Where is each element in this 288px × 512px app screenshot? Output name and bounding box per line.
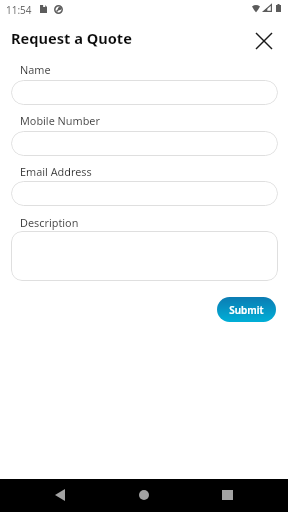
- staticText: Description: [20, 215, 79, 230]
- button[interactable]: [11, 131, 278, 156]
- button[interactable]: Close: [253, 30, 275, 52]
- button[interactable]: [11, 181, 278, 206]
- staticText: 11:54: [6, 3, 32, 17]
- button[interactable]: Back: [52, 487, 68, 503]
- button[interactable]: [11, 231, 278, 281]
- staticText: Email Address: [20, 164, 92, 179]
- staticText: Submit: [229, 303, 264, 316]
- staticText: Mobile Number: [20, 113, 100, 128]
- button[interactable]: Request a Quote: [11, 28, 132, 48]
- button[interactable]: Home: [136, 487, 152, 503]
- button[interactable]: [11, 80, 278, 105]
- button[interactable]: Submit: [217, 297, 276, 322]
- staticText: Name: [20, 62, 51, 77]
- button[interactable]: Recent apps: [219, 487, 235, 503]
